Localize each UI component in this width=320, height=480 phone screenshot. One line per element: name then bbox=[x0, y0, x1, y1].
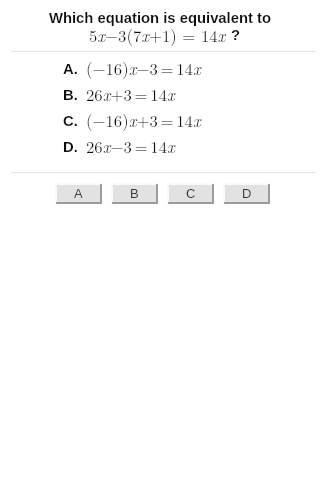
button[interactable]: Choose answer C bbox=[167, 183, 214, 204]
staticText: Which equation is equivalent to bbox=[49, 10, 271, 27]
staticText: ? bbox=[231, 27, 241, 44]
staticText: C. bbox=[63, 113, 78, 130]
staticText: B. bbox=[63, 87, 78, 104]
button[interactable] bbox=[11, 106, 316, 132]
staticText: 26x+3 = 14x bbox=[86, 82, 175, 106]
button[interactable] bbox=[11, 54, 316, 80]
button[interactable]: Choose answer A bbox=[55, 183, 102, 204]
button[interactable]: Choose answer D bbox=[223, 183, 270, 204]
staticText: A. bbox=[63, 61, 78, 78]
staticText: D. bbox=[63, 139, 78, 156]
staticText: B bbox=[130, 186, 139, 201]
staticText: D bbox=[242, 186, 252, 201]
staticText: (−16)x+3 = 14x bbox=[86, 108, 201, 132]
staticText: (−16)x−3 = 14x bbox=[86, 56, 201, 80]
staticText: A bbox=[74, 186, 83, 201]
button[interactable] bbox=[11, 132, 316, 158]
staticText: 5x−3(7x+1) = 14x bbox=[89, 23, 226, 47]
button[interactable] bbox=[11, 80, 316, 106]
staticText: C bbox=[186, 186, 196, 201]
button[interactable]: Choose answer B bbox=[111, 183, 158, 204]
staticText: 26x−3 = 14x bbox=[86, 134, 175, 158]
